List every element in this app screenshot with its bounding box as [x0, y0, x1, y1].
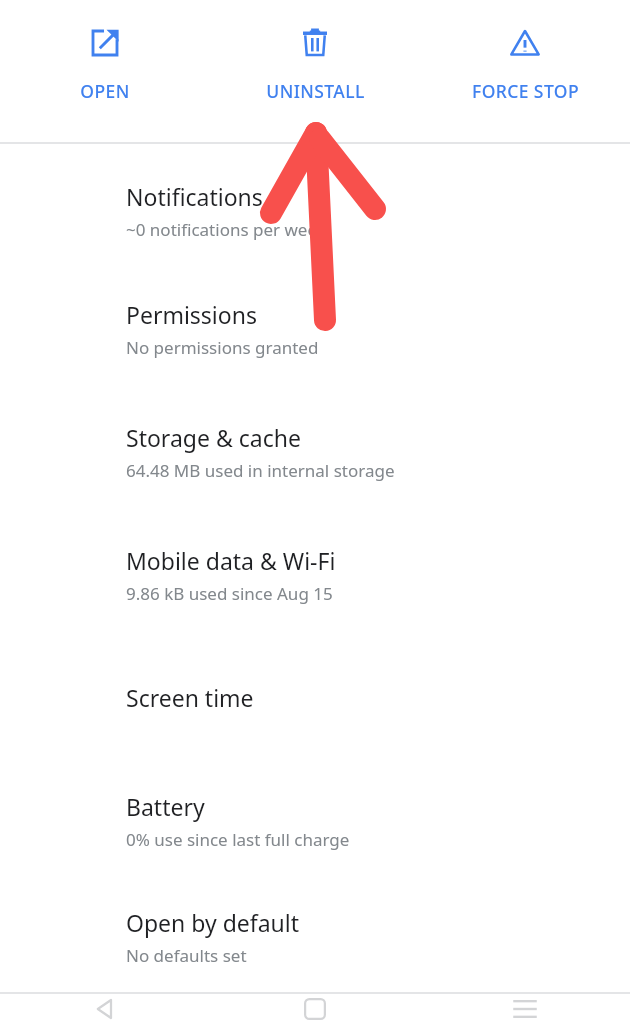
- button[interactable]: Mobile data & Wi-Fi: [0, 513, 630, 636]
- staticText: No defaults set: [126, 944, 247, 967]
- staticText: Permissions: [126, 299, 257, 330]
- staticText: Storage & cache: [126, 422, 301, 453]
- staticText: Battery: [126, 791, 205, 822]
- button[interactable]: Home: [210, 994, 420, 1024]
- button[interactable]: Storage & cache: [0, 390, 630, 513]
- button[interactable]: Screen time: [0, 636, 630, 759]
- button[interactable]: OPEN: [0, 0, 210, 103]
- staticText: 0% use since last full charge: [126, 828, 350, 851]
- staticText: Notifications: [126, 181, 263, 212]
- button[interactable]: UNINSTALL: [210, 0, 420, 103]
- button[interactable]: Battery: [0, 759, 630, 882]
- staticText: OPEN: [80, 79, 130, 103]
- staticText: No permissions granted: [126, 336, 319, 359]
- staticText: FORCE STOP: [472, 79, 579, 103]
- staticText: 64.48 MB used in internal storage: [126, 459, 395, 482]
- button[interactable]: Open by default: [0, 882, 630, 992]
- button[interactable]: Notifications: [0, 154, 630, 267]
- button[interactable]: Permissions: [0, 267, 630, 390]
- staticText: Mobile data & Wi-Fi: [126, 545, 336, 576]
- staticText: Screen time: [126, 682, 254, 713]
- button[interactable]: Back: [0, 994, 210, 1024]
- button[interactable]: Recent apps: [420, 994, 630, 1024]
- button[interactable]: FORCE STOP: [420, 0, 630, 103]
- staticText: UNINSTALL: [266, 79, 365, 103]
- staticText: ~0 notifications per week: [126, 218, 327, 241]
- staticText: Open by default: [126, 907, 300, 938]
- staticText: 9.86 kB used since Aug 15: [126, 582, 333, 605]
